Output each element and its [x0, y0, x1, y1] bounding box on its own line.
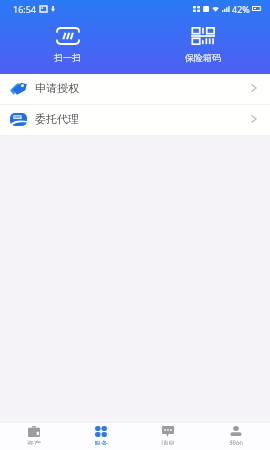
button[interactable]: 委托代理 — [0, 105, 270, 135]
button[interactable]: 资产 — [0, 423, 67, 450]
button[interactable]: 保险箱码 — [135, 0, 270, 68]
button[interactable]: 我的 — [202, 423, 270, 450]
staticText: 申请授权 — [35, 81, 79, 95]
staticText: 资产 — [27, 439, 41, 445]
staticText: 消息 — [161, 439, 175, 445]
button[interactable]: 申请授权 — [0, 74, 270, 104]
staticText: 扫一扫 — [54, 52, 81, 63]
button[interactable]: 扫一扫 — [0, 0, 135, 68]
button[interactable]: 消息 — [134, 423, 202, 450]
button[interactable]: 服务 — [67, 423, 134, 450]
staticText: 我的 — [229, 439, 243, 445]
staticText: 服务 — [94, 439, 108, 445]
staticText: 16:54 — [13, 3, 37, 15]
staticText: 委托代理 — [35, 112, 79, 126]
staticText: 保险箱码 — [185, 52, 221, 63]
staticText: 42% — [232, 3, 250, 15]
